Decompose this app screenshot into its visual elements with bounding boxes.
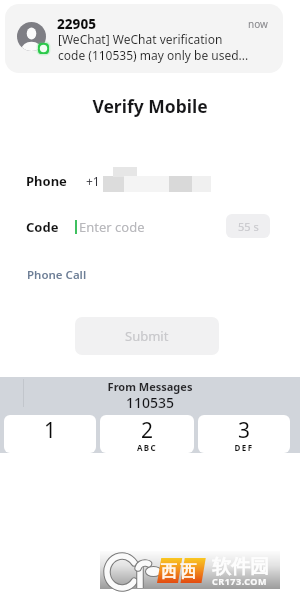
button[interactable]: 22905 <box>5 4 283 73</box>
staticText: 55 s <box>238 219 259 234</box>
staticText: 3 <box>198 416 290 445</box>
staticText: DEF <box>198 442 290 453</box>
staticText: 1 <box>4 416 96 445</box>
staticText: Submit <box>125 327 169 345</box>
button[interactable]: Submit <box>75 317 219 355</box>
staticText: 软件园 <box>212 555 269 579</box>
button[interactable]: 1 <box>4 415 96 453</box>
button[interactable]: 55 s <box>226 214 270 238</box>
staticText: now <box>248 17 268 31</box>
staticText: Enter code <box>79 218 145 236</box>
button[interactable]: From Messages <box>0 377 300 413</box>
staticText: ABC <box>100 442 194 453</box>
staticText: Verify Mobile <box>0 94 300 118</box>
staticText: [WeChat] WeChat verification code (11053… <box>58 31 283 63</box>
button[interactable]: 3 <box>198 415 290 453</box>
button[interactable]: Phone Call <box>27 267 87 283</box>
button[interactable]: 2 <box>100 415 194 453</box>
staticText: Phone <box>26 172 67 190</box>
staticText: 22905 <box>57 15 97 33</box>
staticText: +1 <box>86 173 100 189</box>
staticText: 110535 <box>0 393 300 412</box>
staticText: From Messages <box>0 379 300 394</box>
staticText: Code <box>26 218 59 236</box>
staticText: CR173.COM <box>212 575 267 587</box>
staticText: 2 <box>100 416 194 445</box>
staticText: 西西 <box>159 562 198 582</box>
